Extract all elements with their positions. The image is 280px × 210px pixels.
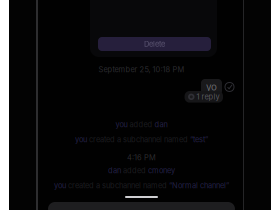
staticText: 1 reply [196,92,219,101]
staticText: you [115,120,127,129]
staticText: Delete [144,39,165,48]
staticText: dan [108,166,121,175]
staticText: “test” [190,135,208,144]
staticText: created a subchannel named [87,135,190,144]
staticText: 4:16 PM [127,153,156,162]
staticText: “Normal channel” [169,181,229,190]
staticText: created a subchannel named [66,181,169,190]
staticText: September 25, 10:18 PM [98,65,184,74]
staticText: you [54,181,66,190]
staticText: you [75,135,87,144]
button[interactable]: Delete [98,37,211,51]
staticText: added [127,120,154,129]
button[interactable]: 1 reply [185,91,223,103]
staticText: dan [154,120,167,129]
staticText: added [121,166,148,175]
staticText: cmoney [148,166,175,175]
staticText: yo [206,81,217,93]
